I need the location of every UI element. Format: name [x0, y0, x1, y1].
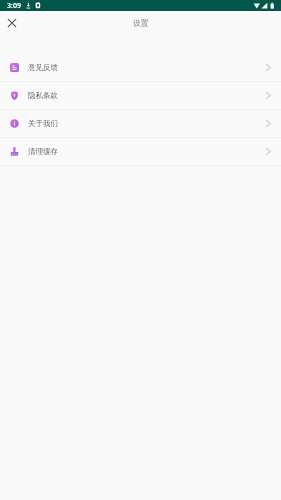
button[interactable]: 意见反馈 [0, 54, 281, 81]
button[interactable]: Close [2, 13, 22, 33]
staticText: 设置 [133, 18, 149, 28]
staticText: 意见反馈 [28, 63, 58, 72]
button[interactable]: 隐私条款 [0, 82, 281, 109]
staticText: 3:09 [7, 1, 21, 11]
button[interactable]: 清理缓存 [0, 138, 281, 165]
staticText: 清理缓存 [28, 147, 58, 156]
button[interactable]: 关于我们 [0, 110, 281, 137]
staticText: 隐私条款 [28, 91, 58, 100]
staticText: 关于我们 [28, 119, 58, 128]
